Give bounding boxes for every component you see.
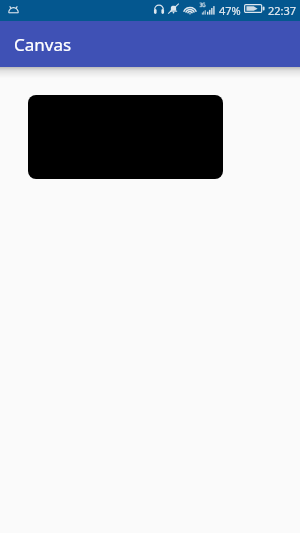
staticText: 22:37	[268, 3, 297, 18]
staticText: 47%	[219, 3, 241, 18]
staticText: Canvas	[14, 33, 72, 56]
button[interactable]: Drawing canvas	[28, 95, 223, 179]
